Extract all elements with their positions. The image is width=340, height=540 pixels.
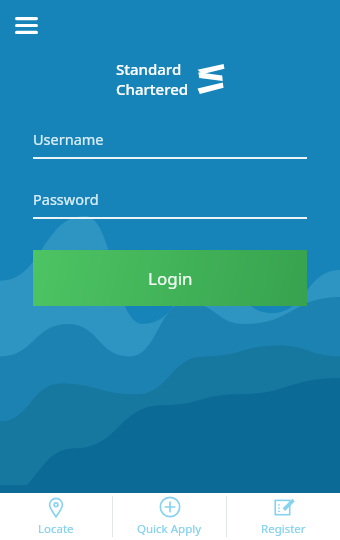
staticText: Standard <box>116 59 182 79</box>
staticText: Locate <box>38 521 74 537</box>
button[interactable]: Password <box>33 189 307 219</box>
button[interactable]: Locate <box>0 493 112 540</box>
button[interactable]: Login <box>33 250 307 306</box>
button[interactable]: Username <box>33 129 307 159</box>
staticText: Login <box>148 267 193 290</box>
staticText: Password <box>33 189 99 209</box>
button[interactable]: Register <box>227 493 340 540</box>
staticText: Username <box>33 129 104 149</box>
staticText: Chartered <box>116 79 189 99</box>
staticText: Quick Apply <box>137 521 202 537</box>
staticText: Register <box>261 521 306 537</box>
button[interactable]: Quick Apply <box>113 493 226 540</box>
button[interactable]: Menu <box>8 7 44 43</box>
